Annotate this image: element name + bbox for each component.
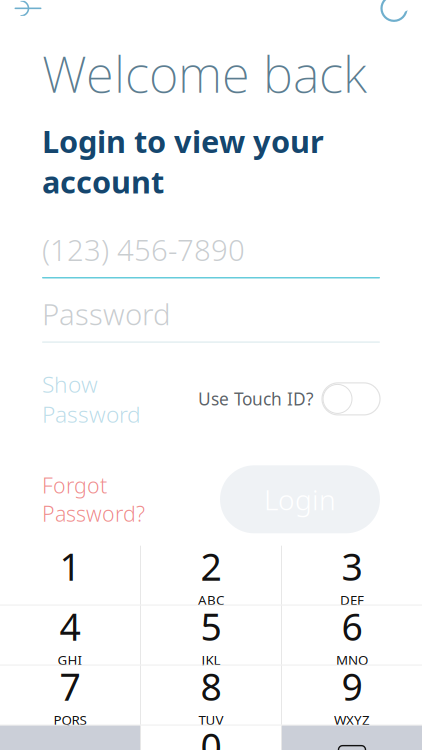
button[interactable]: Login xyxy=(220,465,380,533)
staticText: 0 xyxy=(200,721,221,750)
button[interactable]: 8 xyxy=(141,666,281,725)
staticText: Login to view your account xyxy=(42,121,324,202)
button[interactable]: Use Touch ID xyxy=(314,383,380,415)
button[interactable]: 9 xyxy=(282,666,422,725)
staticText: Login xyxy=(264,481,336,518)
staticText: 3 xyxy=(341,541,362,591)
staticText: Welcome back xyxy=(42,39,367,107)
staticText: TUV xyxy=(198,711,223,729)
staticText: Show Password xyxy=(42,369,141,429)
button[interactable]: 3 xyxy=(282,546,422,605)
staticText: MNO xyxy=(336,651,368,669)
staticText: 8 xyxy=(200,661,221,711)
staticText: ABC xyxy=(198,591,224,609)
button[interactable]: 0 xyxy=(141,726,281,750)
staticText: × xyxy=(348,743,359,750)
button[interactable]: Back xyxy=(0,0,56,29)
staticText: DEF xyxy=(340,591,364,609)
staticText: Password xyxy=(42,294,171,333)
button[interactable]: Call xyxy=(366,0,422,29)
staticText: 1 xyxy=(59,541,80,591)
staticText: Forgot Password? xyxy=(42,471,145,528)
staticText: GHI xyxy=(57,651,82,669)
button[interactable]: 7 xyxy=(0,666,140,725)
staticText: 5 xyxy=(200,601,221,651)
staticText: JKL xyxy=(201,651,220,669)
button[interactable]: 1 xyxy=(0,546,140,605)
staticText: 6 xyxy=(341,601,362,651)
staticText: Use Touch ID? xyxy=(198,387,314,410)
staticText: (123) 456-7890 xyxy=(42,230,245,269)
staticText: PQRS xyxy=(53,711,86,729)
button[interactable]: Forgot Password? xyxy=(42,461,145,538)
button[interactable]: Delete xyxy=(282,726,422,750)
button[interactable]: Show Password xyxy=(42,361,141,437)
button[interactable]: 6 xyxy=(282,606,422,665)
staticText: 4 xyxy=(59,601,80,651)
staticText: 7 xyxy=(59,661,80,711)
staticText: 2 xyxy=(200,541,221,591)
button[interactable]: 2 xyxy=(141,546,281,605)
button[interactable]: 4 xyxy=(0,606,140,665)
staticText: 9 xyxy=(341,661,362,711)
button[interactable]: 5 xyxy=(141,606,281,665)
staticText: WXYZ xyxy=(334,711,370,729)
